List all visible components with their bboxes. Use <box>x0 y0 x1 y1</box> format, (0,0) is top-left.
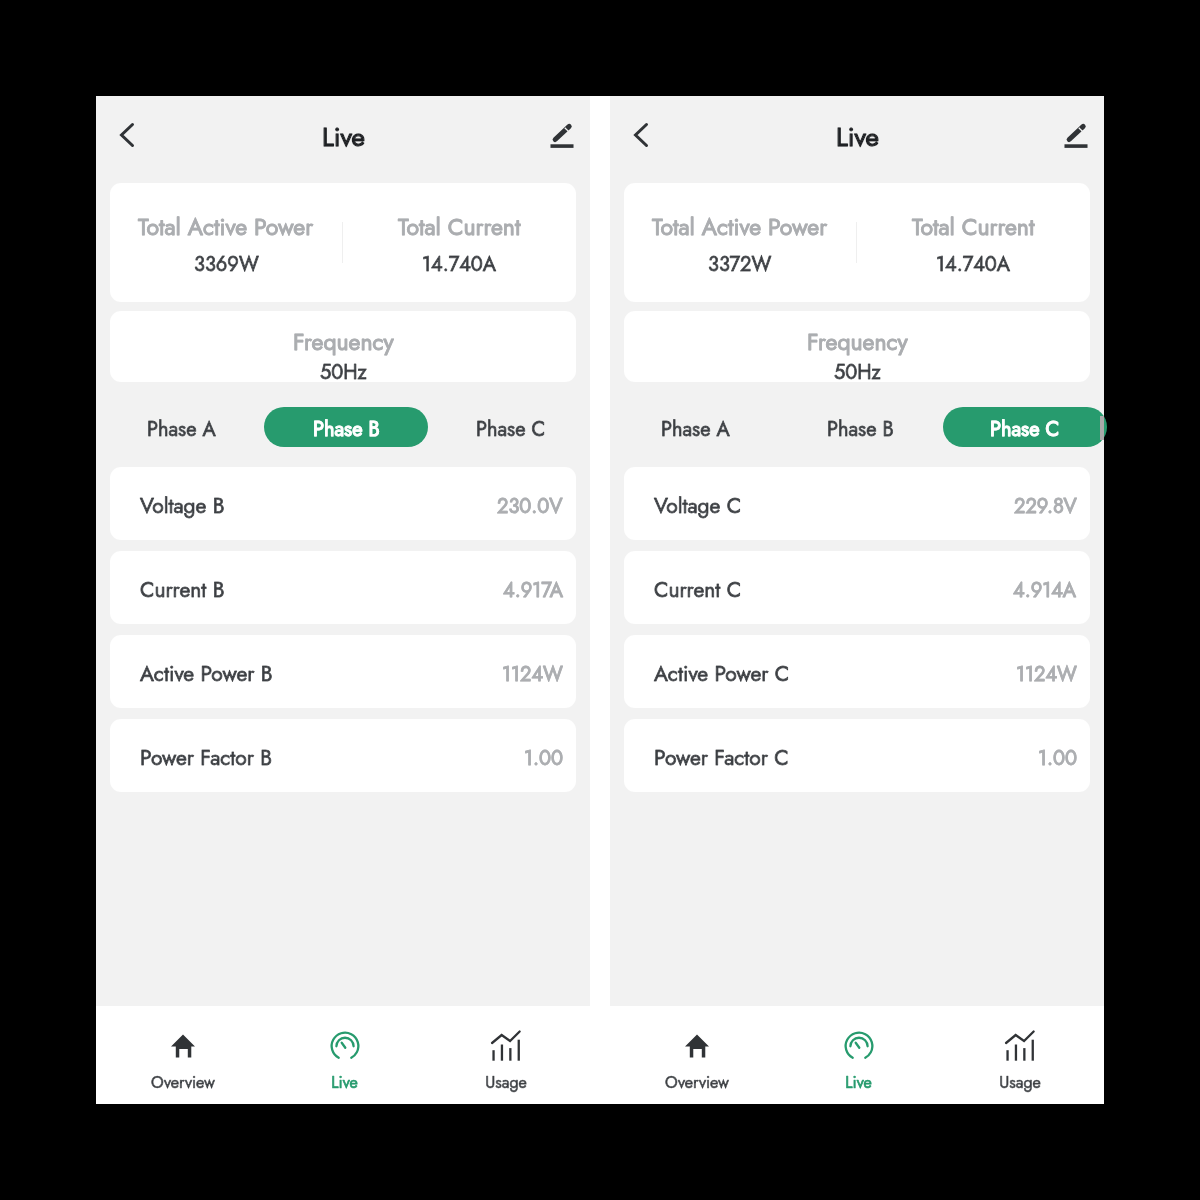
staticText: 3372W <box>708 250 772 279</box>
staticText: 4.917A <box>503 576 563 605</box>
staticText: 50Hz <box>834 358 881 382</box>
button[interactable]: Total Active Power <box>110 183 576 302</box>
staticText: Total Current <box>398 210 521 243</box>
button[interactable]: Back <box>615 107 667 163</box>
staticText: Overview <box>151 1071 215 1094</box>
button[interactable]: Voltage B <box>110 467 576 540</box>
button[interactable]: Back <box>101 107 153 163</box>
staticText: Overview <box>665 1071 729 1094</box>
staticText: 50Hz <box>320 358 367 382</box>
button[interactable]: Usage <box>425 1006 586 1104</box>
staticText: 3372W <box>708 250 772 279</box>
button[interactable]: Frequency <box>110 311 576 382</box>
button[interactable]: Total Active Power <box>624 183 1090 302</box>
button[interactable]: Active Power B <box>110 635 576 708</box>
button[interactable]: Phase B <box>264 407 428 447</box>
staticText: 1.00 <box>1038 744 1077 773</box>
staticText: Current B <box>140 575 225 605</box>
staticText: Usage <box>999 1071 1041 1094</box>
staticText: Power Factor B <box>140 743 273 773</box>
button[interactable]: Phase C <box>943 407 1107 447</box>
button[interactable]: Live <box>778 1006 939 1104</box>
staticText: Total Active Power <box>652 210 828 243</box>
staticText: Overview <box>665 1071 729 1094</box>
staticText: 229.8V <box>1014 492 1077 521</box>
staticText: 3369W <box>194 250 259 279</box>
staticText: Total Active Power <box>138 210 314 243</box>
staticText: 14.740A <box>936 250 1011 279</box>
button[interactable]: Power Factor B <box>110 719 576 792</box>
button[interactable]: Phase C <box>429 407 593 447</box>
button[interactable]: Current C <box>624 551 1090 624</box>
staticText: Phase C <box>990 415 1060 444</box>
button[interactable]: Active Power C <box>624 635 1090 708</box>
button[interactable]: Phase B <box>778 407 942 447</box>
staticText: Active Power C <box>654 659 790 689</box>
staticText: 14.740A <box>422 250 497 279</box>
button[interactable]: Edit <box>536 108 588 164</box>
staticText: 1124W <box>1016 660 1077 689</box>
staticText: 1.00 <box>524 744 563 773</box>
staticText: 1124W <box>502 660 563 689</box>
staticText: 229.8V <box>1014 492 1077 521</box>
staticText: 230.0V <box>497 492 563 521</box>
staticText: 4.914A <box>1013 576 1077 605</box>
staticText: 4.914A <box>1013 576 1077 605</box>
staticText: Active Power C <box>654 659 790 689</box>
button[interactable]: Live <box>264 1006 425 1104</box>
staticText: Total Active Power <box>138 210 314 243</box>
staticText: Total Current <box>398 210 521 243</box>
staticText: 1.00 <box>524 744 563 773</box>
button[interactable]: Phase A <box>613 407 777 447</box>
staticText: 1124W <box>502 660 563 689</box>
staticText: Overview <box>151 1071 215 1094</box>
staticText: Total Current <box>912 210 1035 243</box>
staticText: Voltage C <box>654 491 742 521</box>
staticText: Live <box>331 1071 358 1094</box>
staticText: Current C <box>654 575 742 605</box>
staticText: Live <box>331 1071 358 1094</box>
staticText: Total Active Power <box>652 210 828 243</box>
button[interactable]: Edit <box>1050 108 1102 164</box>
staticText: Current C <box>654 575 742 605</box>
button[interactable]: Voltage C <box>624 467 1090 540</box>
staticText: Live <box>322 118 365 156</box>
staticText: Frequency <box>293 325 394 358</box>
staticText: Active Power B <box>140 659 273 689</box>
staticText: Voltage B <box>140 491 225 521</box>
staticText: Voltage B <box>140 491 225 521</box>
staticText: Frequency <box>807 325 908 358</box>
staticText: Phase A <box>147 415 216 444</box>
staticText: Usage <box>999 1071 1041 1094</box>
staticText: Phase B <box>313 415 380 444</box>
button[interactable]: Usage <box>939 1006 1100 1104</box>
button[interactable]: Overview <box>616 1006 778 1104</box>
staticText: 4.917A <box>503 576 563 605</box>
staticText: Phase C <box>476 415 546 444</box>
staticText: 3369W <box>194 250 259 279</box>
button[interactable]: Frequency <box>624 311 1090 382</box>
button[interactable]: Power Factor C <box>624 719 1090 792</box>
staticText: Live <box>845 1071 872 1094</box>
button[interactable]: Overview <box>102 1006 264 1104</box>
button[interactable]: Phase A <box>99 407 263 447</box>
staticText: Power Factor C <box>654 743 789 773</box>
staticText: Phase A <box>661 415 730 444</box>
staticText: Total Current <box>912 210 1035 243</box>
staticText: 1124W <box>1016 660 1077 689</box>
staticText: Current B <box>140 575 225 605</box>
staticText: Live <box>322 118 365 156</box>
staticText: 50Hz <box>320 358 367 382</box>
button[interactable]: Current B <box>110 551 576 624</box>
staticText: Usage <box>485 1071 527 1094</box>
staticText: Live <box>836 118 879 156</box>
staticText: Voltage C <box>654 491 742 521</box>
staticText: Usage <box>485 1071 527 1094</box>
staticText: 14.740A <box>422 250 497 279</box>
staticText: 230.0V <box>497 492 563 521</box>
staticText: Frequency <box>293 325 394 358</box>
staticText: Phase C <box>990 415 1060 444</box>
staticText: Phase C <box>476 415 546 444</box>
staticText: 1.00 <box>1038 744 1077 773</box>
staticText: Phase B <box>827 415 894 444</box>
